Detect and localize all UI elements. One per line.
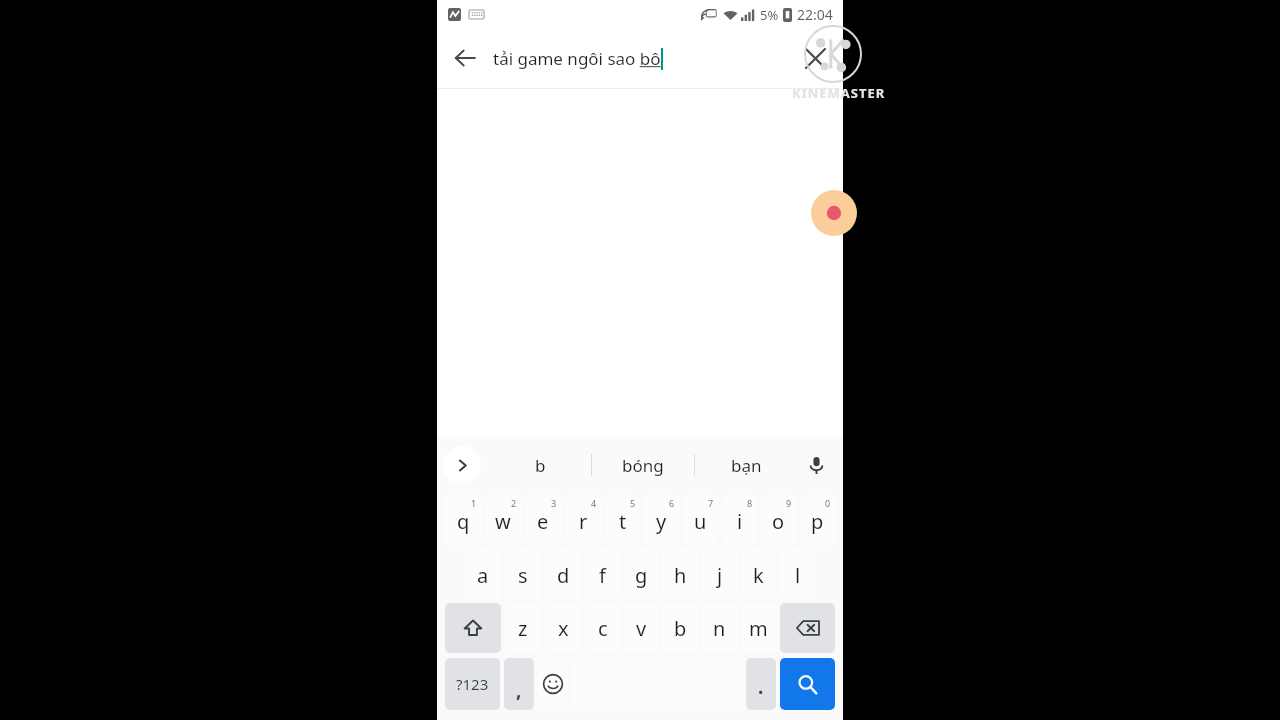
staticText: i	[737, 508, 743, 535]
button[interactable]: Back	[437, 30, 493, 86]
button[interactable]: a	[465, 549, 501, 599]
button[interactable]: b	[489, 437, 591, 493]
button[interactable]: v	[624, 603, 659, 653]
button[interactable]: z	[505, 603, 541, 653]
staticText: bạn	[731, 454, 762, 477]
staticText: 6	[669, 497, 675, 509]
button[interactable]: n	[702, 603, 737, 653]
staticText: 2	[511, 497, 517, 509]
staticText: 5	[630, 497, 636, 509]
button[interactable]: j	[702, 549, 737, 599]
staticText: 1	[471, 497, 477, 509]
staticText: g	[635, 562, 648, 589]
button[interactable]: l	[780, 549, 815, 599]
staticText: e	[537, 508, 549, 535]
staticText: 7	[708, 497, 714, 509]
button[interactable]: f	[585, 549, 620, 599]
staticText: l	[795, 562, 801, 589]
staticText: 22:04	[797, 5, 833, 24]
button[interactable]: ,	[504, 658, 534, 710]
button[interactable]: Clear	[787, 30, 843, 86]
button[interactable]: u	[683, 495, 718, 545]
button[interactable]: .	[746, 658, 776, 710]
button[interactable]: q	[445, 495, 481, 545]
staticText: f	[599, 562, 606, 589]
button[interactable]: h	[663, 549, 698, 599]
staticText: 8	[747, 497, 753, 509]
staticText: j	[717, 562, 723, 589]
staticText: KINEMASTER	[792, 84, 886, 102]
staticText: 0	[825, 497, 831, 509]
button[interactable]: p	[800, 495, 835, 545]
button[interactable]: m	[741, 603, 776, 653]
button[interactable]: w	[485, 495, 521, 545]
staticText: r	[579, 508, 588, 535]
button[interactable]: Search	[780, 658, 835, 710]
button[interactable]: Emoji	[538, 658, 568, 710]
staticText: k	[753, 562, 764, 589]
staticText: b	[535, 454, 546, 477]
staticText: v	[636, 615, 647, 642]
button[interactable]: r	[565, 495, 601, 545]
staticText: ?123	[456, 674, 489, 694]
staticText: 9	[786, 497, 792, 509]
button[interactable]: k	[741, 549, 776, 599]
staticText: 5%	[760, 6, 779, 24]
staticText: a	[477, 562, 489, 589]
staticText: .	[758, 674, 764, 700]
staticText: bóng	[622, 454, 664, 477]
staticText: z	[518, 615, 528, 642]
staticText: ,	[516, 677, 522, 703]
button[interactable]: t	[605, 495, 640, 545]
staticText: o	[772, 508, 785, 535]
button[interactable]: Backspace	[780, 603, 835, 653]
staticText: t	[619, 508, 627, 535]
staticText: 4	[591, 497, 597, 509]
button[interactable]: Expand suggestions	[443, 446, 481, 484]
button[interactable]: y	[644, 495, 679, 545]
button[interactable]: bóng	[592, 437, 694, 493]
staticText: s	[518, 562, 528, 589]
staticText: y	[656, 508, 667, 535]
button[interactable]: s	[505, 549, 541, 599]
button[interactable]: x	[545, 603, 581, 653]
button[interactable]: i	[722, 495, 757, 545]
button[interactable]: e	[525, 495, 561, 545]
staticText: 3	[551, 497, 557, 509]
button[interactable]: d	[545, 549, 581, 599]
staticText: q	[457, 508, 470, 535]
staticText: d	[557, 562, 570, 589]
staticText: m	[749, 615, 768, 642]
button[interactable]: c	[585, 603, 620, 653]
staticText: x	[558, 615, 569, 642]
staticText: c	[598, 615, 608, 642]
staticText: b	[674, 615, 687, 642]
staticText: w	[495, 508, 511, 535]
staticText: u	[694, 508, 707, 535]
staticText: tải game ngôi sao bô	[493, 47, 661, 70]
staticText: p	[811, 508, 824, 535]
button[interactable]: Voice input	[799, 448, 833, 482]
button[interactable]: b	[663, 603, 698, 653]
button[interactable]: o	[761, 495, 796, 545]
button[interactable]: Shift	[445, 603, 501, 653]
button[interactable]: ?123	[445, 658, 500, 710]
button[interactable]: g	[624, 549, 659, 599]
staticText: n	[713, 615, 726, 642]
staticText: h	[674, 562, 687, 589]
button[interactable]: bạn	[695, 437, 797, 493]
